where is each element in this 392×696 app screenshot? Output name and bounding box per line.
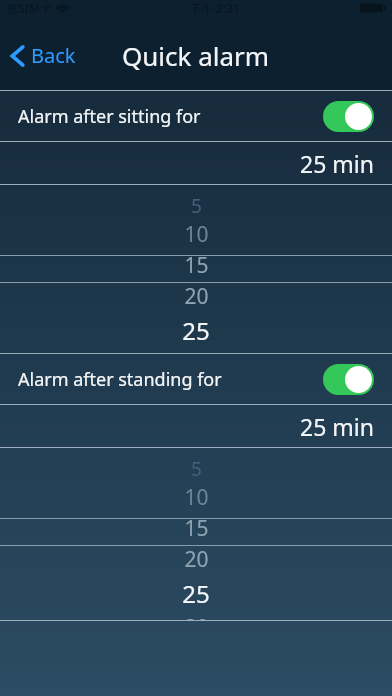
staticText: 15 [184, 514, 209, 543]
button[interactable]: 5 [0, 448, 392, 620]
staticText: 5 [191, 193, 202, 219]
button[interactable]: Alarm after standing for [0, 354, 392, 404]
staticText: 25 [182, 314, 210, 347]
button[interactable]: Alarm after sitting for [0, 91, 392, 141]
button[interactable]: Toggle alarm [323, 364, 374, 395]
staticText: 10 [184, 483, 209, 512]
staticText: 5 [191, 456, 202, 482]
button[interactable]: Toggle alarm [323, 101, 374, 132]
staticText: 20 [184, 282, 209, 311]
button[interactable]: 5 [0, 185, 392, 353]
staticText: 10 [184, 220, 209, 249]
staticText: 15 [184, 251, 209, 280]
staticText: 30 [184, 613, 209, 620]
staticText: 25 [182, 577, 210, 610]
staticText: Alarm after sitting for [18, 104, 201, 129]
staticText: Quick alarm [122, 38, 270, 73]
staticText: Alarm after standing for [18, 367, 222, 392]
staticText: 25 min [300, 148, 374, 179]
button[interactable]: 25 min [0, 142, 392, 184]
button[interactable]: Back [0, 34, 90, 77]
staticText: Back [31, 42, 76, 69]
staticText: 下午 2:31 [189, 0, 240, 16]
staticText: 20 [184, 545, 209, 574]
button[interactable]: 25 min [0, 405, 392, 447]
staticText: 無SIM卡 [6, 0, 52, 16]
staticText: 25 min [300, 411, 374, 442]
